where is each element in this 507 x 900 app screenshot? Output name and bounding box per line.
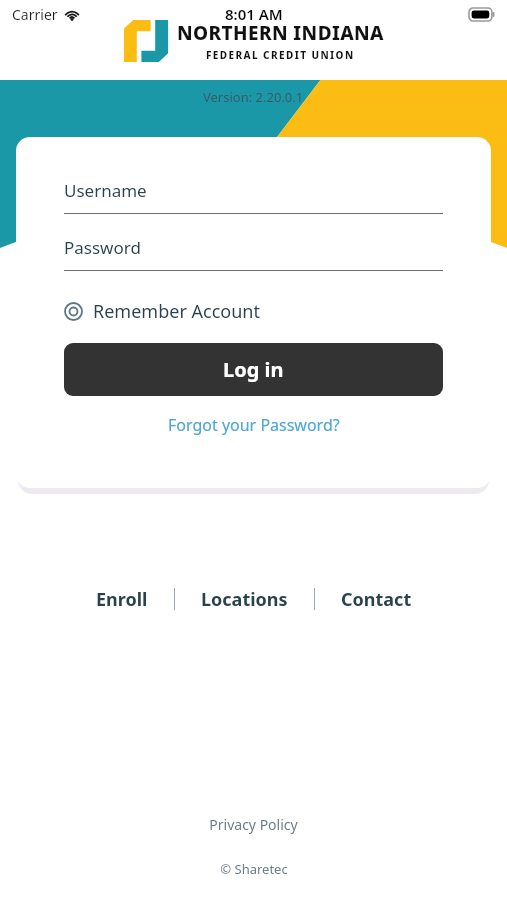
staticText: 8:01 AM xyxy=(225,4,283,24)
staticText: Forgot your Password? xyxy=(168,414,340,436)
button[interactable]: Forgot your Password? xyxy=(16,410,491,440)
button[interactable]: Password xyxy=(64,236,443,271)
staticText: Contact xyxy=(341,587,412,611)
staticText: FEDERAL CREDIT UNION xyxy=(206,48,355,62)
staticText: Version: 2.20.0.1 xyxy=(203,88,304,106)
staticText: Locations xyxy=(201,587,288,611)
staticText: Remember Account xyxy=(93,299,260,324)
button[interactable]: Remember Account xyxy=(64,293,260,329)
button[interactable]: Contact xyxy=(327,583,426,615)
staticText: © Sharetec xyxy=(220,860,288,878)
button[interactable]: Username xyxy=(64,179,443,214)
button[interactable]: Privacy Policy xyxy=(197,811,310,838)
staticText: Enroll xyxy=(96,587,148,611)
button[interactable]: Log in xyxy=(64,343,443,396)
staticText: Username xyxy=(64,179,147,202)
staticText: Privacy Policy xyxy=(209,815,298,834)
staticText: Password xyxy=(64,236,141,259)
button[interactable]: Locations xyxy=(187,583,302,615)
staticText: NORTHERN INDIANA xyxy=(177,20,384,46)
staticText: Log in xyxy=(223,356,284,383)
staticText: Carrier xyxy=(12,5,58,24)
button[interactable]: Enroll xyxy=(82,583,162,615)
